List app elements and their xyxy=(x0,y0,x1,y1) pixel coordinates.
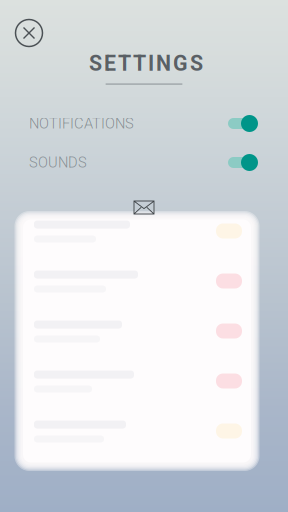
staticText: SOUNDS xyxy=(29,154,87,171)
button[interactable]: NOTIFICATIONS xyxy=(0,104,288,143)
staticText: NOTIFICATIONS xyxy=(29,115,134,132)
staticText: S E T T I N G S xyxy=(89,51,203,76)
button[interactable]: Close xyxy=(13,17,45,49)
button[interactable]: SOUNDS xyxy=(0,143,288,182)
